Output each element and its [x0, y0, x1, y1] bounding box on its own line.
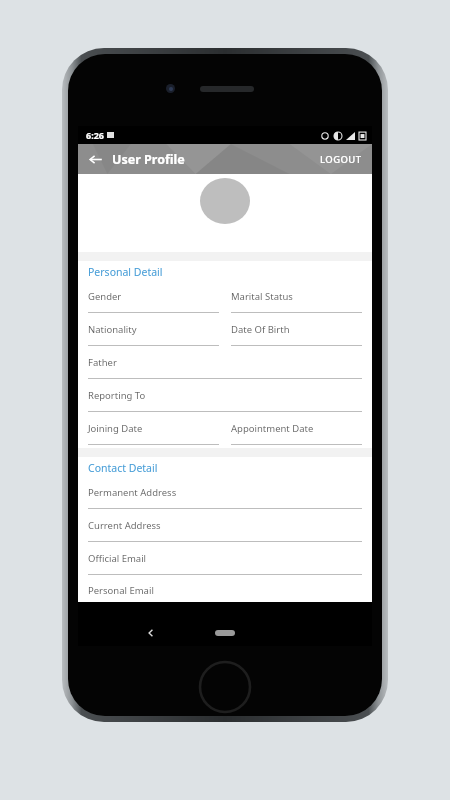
- button[interactable]: Home button: [198, 660, 252, 714]
- staticText: Nationality: [88, 323, 137, 336]
- button[interactable]: Current Address: [78, 512, 372, 545]
- staticText: Official Email: [88, 552, 147, 565]
- staticText: Date Of Birth: [231, 323, 290, 336]
- button[interactable]: Home: [208, 623, 242, 643]
- button[interactable]: Profile photo: [200, 178, 250, 224]
- staticText: Personal Email: [88, 584, 154, 597]
- staticText: 6:26: [86, 129, 104, 141]
- button[interactable]: Marital Status: [225, 283, 372, 316]
- staticText: Reporting To: [88, 389, 146, 402]
- staticText: Contact Detail: [88, 461, 158, 475]
- staticText: User Profile: [112, 151, 185, 168]
- button[interactable]: Permanent Address: [78, 479, 372, 512]
- button[interactable]: Date Of Birth: [225, 316, 372, 349]
- button[interactable]: Navigate up: [78, 144, 112, 174]
- button[interactable]: Appointment Date: [225, 415, 372, 448]
- staticText: Father: [88, 356, 117, 369]
- button[interactable]: Personal Email: [78, 578, 372, 602]
- button[interactable]: LOGOUT: [318, 147, 364, 172]
- staticText: Joining Date: [88, 422, 143, 435]
- button[interactable]: Father: [78, 349, 372, 382]
- staticText: Current Address: [88, 519, 161, 532]
- staticText: Appointment Date: [231, 422, 314, 435]
- staticText: Marital Status: [231, 290, 293, 303]
- button[interactable]: Official Email: [78, 545, 372, 578]
- button[interactable]: Reporting To: [78, 382, 372, 415]
- button[interactable]: Gender: [78, 283, 225, 316]
- staticText: Gender: [88, 290, 122, 303]
- staticText: Permanent Address: [88, 486, 177, 499]
- button[interactable]: Joining Date: [78, 415, 225, 448]
- staticText: Personal Detail: [88, 265, 163, 279]
- button[interactable]: Back: [134, 620, 168, 646]
- button[interactable]: Nationality: [78, 316, 225, 349]
- staticText: LOGOUT: [320, 153, 362, 166]
